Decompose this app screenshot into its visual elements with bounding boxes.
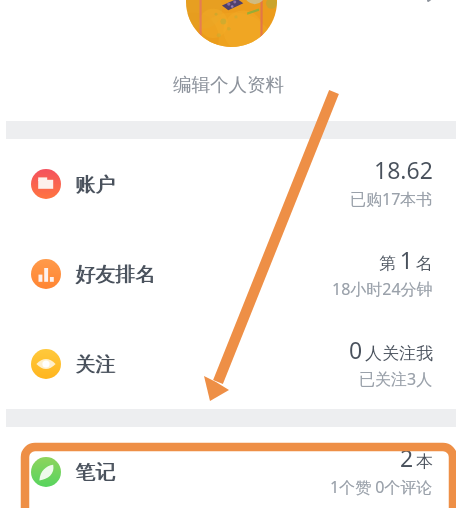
staticText: 关注 xyxy=(75,352,115,377)
staticText: 18小时24分钟 xyxy=(332,278,433,300)
staticText: 关注 xyxy=(76,352,116,377)
staticText: 账户 xyxy=(75,172,115,197)
staticText: 笔记 xyxy=(76,460,116,485)
staticText: 笔记 xyxy=(75,460,115,485)
button[interactable]: 账户 xyxy=(0,139,456,229)
staticText: 编辑个人资料 xyxy=(173,73,284,96)
button[interactable]: 编辑个人资料 xyxy=(163,70,294,99)
staticText: 2 本 xyxy=(400,442,433,473)
staticText: 账户 xyxy=(76,172,116,197)
staticText: 好友排名 xyxy=(75,262,155,287)
button[interactable]: More xyxy=(417,0,447,9)
button[interactable]: Profile photo xyxy=(186,0,277,47)
staticText: 0 人关注我 xyxy=(349,334,433,365)
button[interactable]: 好友排名 xyxy=(0,229,456,319)
staticText: 已购17本书 xyxy=(350,188,433,210)
staticText: 18.62 xyxy=(374,154,433,185)
staticText: 第 1 名 xyxy=(379,244,433,275)
button[interactable]: 笔记 xyxy=(0,427,456,508)
staticText: 已关注3人 xyxy=(359,368,433,390)
staticText: 好友排名 xyxy=(76,262,156,287)
staticText: 1个赞 0个评论 xyxy=(330,476,433,498)
button[interactable]: 关注 xyxy=(0,319,456,409)
